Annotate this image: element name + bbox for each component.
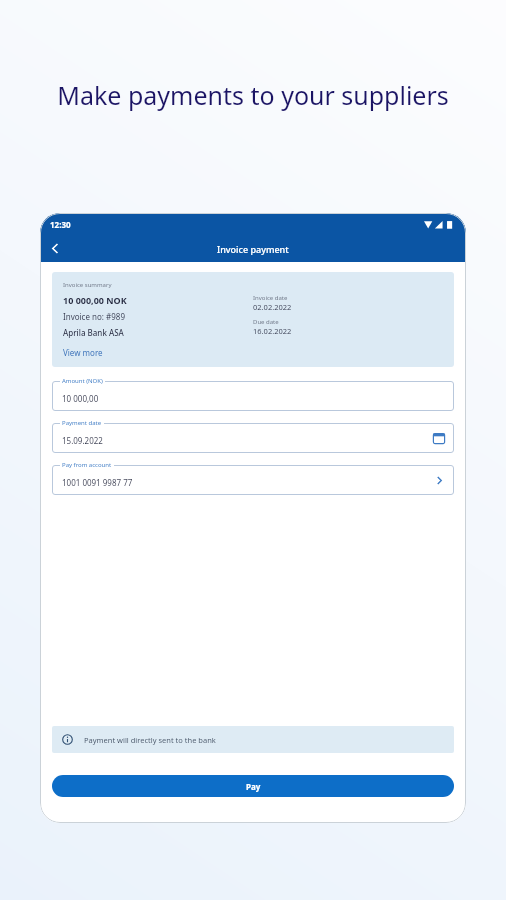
staticText: Payment date xyxy=(62,419,102,427)
staticText: Invoice no: #989 xyxy=(63,311,125,322)
staticText: Due date xyxy=(253,318,279,326)
staticText: Pay from account xyxy=(62,461,112,469)
button[interactable]: Pay xyxy=(52,775,454,797)
button[interactable] xyxy=(52,465,454,495)
button[interactable]: Pick date xyxy=(432,431,446,445)
button[interactable] xyxy=(52,423,454,453)
staticText: Aprila Bank ASA xyxy=(63,327,124,338)
staticText: Pay xyxy=(246,781,261,792)
button[interactable]: Invoice summary xyxy=(52,272,454,367)
staticText: Make payments to your suppliers xyxy=(57,78,449,112)
staticText: 10 000,00 xyxy=(62,393,99,404)
staticText: 16.02.2022 xyxy=(253,326,292,336)
button[interactable]: Payment will directly sent to the bank xyxy=(52,726,454,753)
staticText: 1001 0091 9987 77 xyxy=(62,477,133,488)
staticText: Invoice summary xyxy=(63,281,112,289)
staticText: 12:30 xyxy=(50,219,71,230)
staticText: 02.02.2022 xyxy=(253,302,292,312)
staticText: 10 000,00 NOK xyxy=(63,294,127,306)
button[interactable]: View more xyxy=(63,347,103,358)
button[interactable]: Choose account xyxy=(432,473,446,487)
button[interactable] xyxy=(52,381,454,411)
staticText: Invoice payment xyxy=(217,243,289,255)
staticText: Payment will directly sent to the bank xyxy=(84,735,216,745)
staticText: 15.09.2022 xyxy=(62,435,103,446)
staticText: Amount (NOK) xyxy=(62,377,103,385)
staticText: Invoice date xyxy=(253,294,288,302)
button[interactable]: Back xyxy=(40,235,70,262)
